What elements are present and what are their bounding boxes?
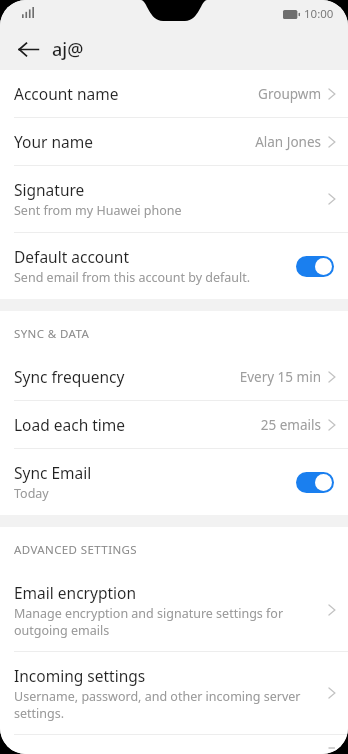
- staticText: Email encryption: [14, 582, 136, 603]
- staticText: Default account: [14, 246, 129, 267]
- staticText: Sync Email: [14, 462, 92, 483]
- staticText: 25 emails: [260, 416, 321, 434]
- staticText: Signature: [14, 179, 85, 200]
- staticText: Load each time: [14, 414, 126, 435]
- staticText: Sync frequency: [14, 366, 125, 387]
- staticText: aj@: [52, 37, 84, 62]
- button[interactable]: Sync Email: [0, 449, 348, 515]
- staticText: Today: [14, 485, 49, 502]
- button[interactable]: Toggle Default account: [296, 256, 334, 277]
- button[interactable]: Back: [8, 29, 48, 69]
- button[interactable]: Email encryption: [0, 569, 348, 651]
- staticText: SYNC & DATA: [14, 326, 90, 342]
- staticText: Username, password, and other incoming s…: [14, 688, 328, 721]
- button[interactable]: Outgoing settings: [0, 735, 348, 754]
- staticText: Every 15 min: [239, 368, 321, 386]
- staticText: Incoming settings: [14, 665, 146, 686]
- staticText: 10:00: [304, 6, 334, 22]
- staticText: Send email from this account by default.: [14, 269, 251, 286]
- button[interactable]: Incoming settings: [0, 652, 348, 734]
- button[interactable]: Signature: [0, 166, 348, 232]
- staticText: Groupwm: [258, 85, 321, 103]
- staticText: Manage encryption and signature settings…: [14, 605, 328, 638]
- button[interactable]: Load each time: [0, 401, 348, 448]
- button[interactable]: Sync frequency: [0, 353, 348, 400]
- button[interactable]: Your name: [0, 118, 348, 165]
- staticText: Your name: [14, 131, 93, 152]
- button[interactable]: Toggle Sync Email: [296, 472, 334, 493]
- staticText: Sent from my Huawei phone: [14, 202, 182, 219]
- staticText: Alan Jones: [255, 133, 321, 151]
- staticText: ADVANCED SETTINGS: [14, 542, 138, 558]
- staticText: Account name: [14, 83, 119, 104]
- button[interactable]: Account name: [0, 70, 348, 117]
- button[interactable]: Default account: [0, 233, 348, 299]
